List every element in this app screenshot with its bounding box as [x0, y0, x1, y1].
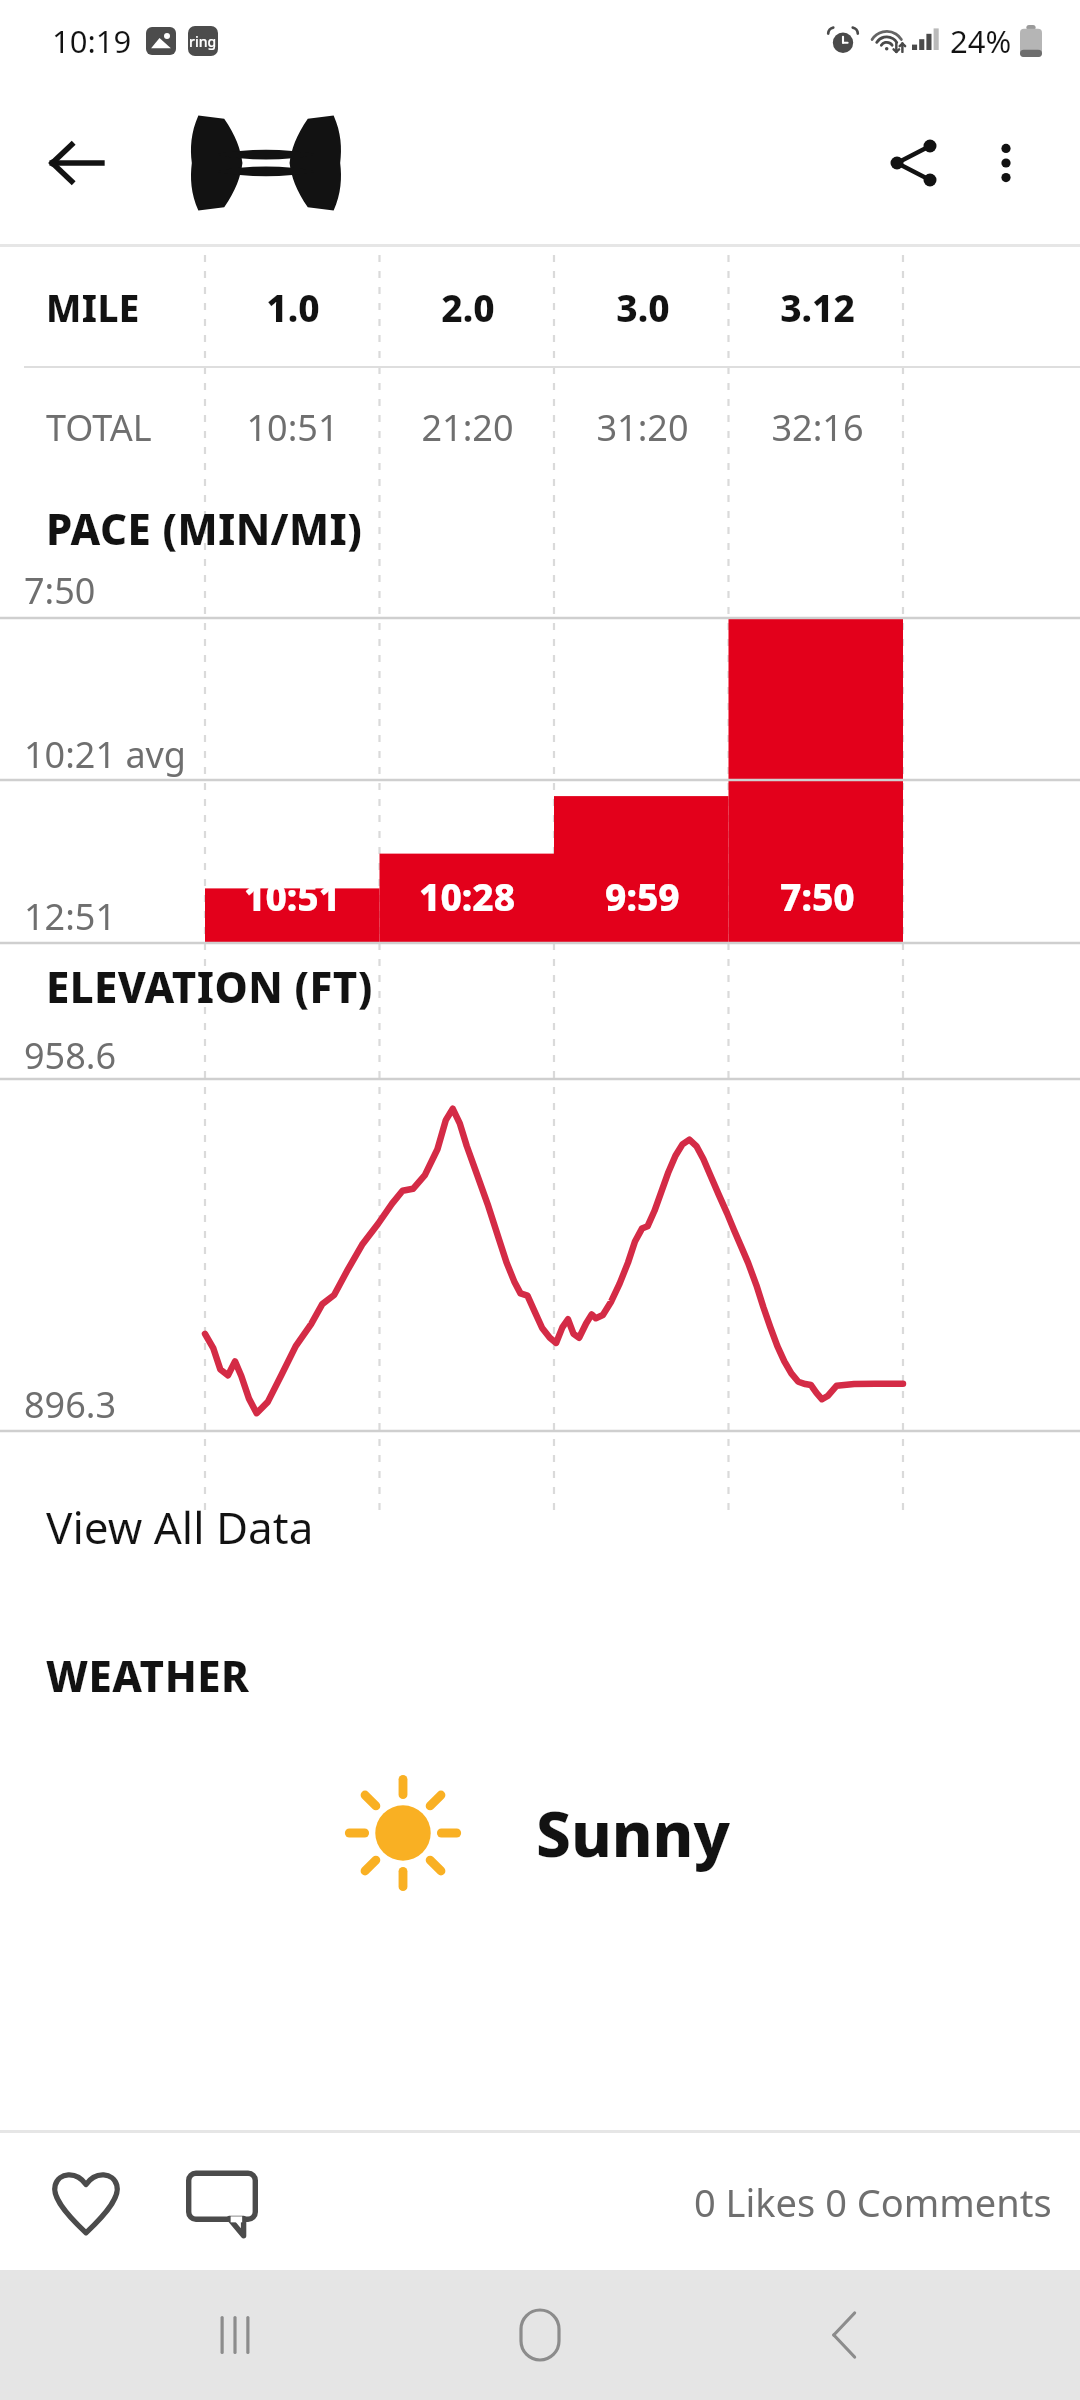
button[interactable]: Share: [866, 115, 962, 211]
staticText: PACE (MIN/MI): [46, 500, 363, 557]
button[interactable]: Comment: [170, 2150, 274, 2254]
button[interactable]: More options: [962, 119, 1050, 207]
staticText: 24%: [950, 20, 1012, 62]
staticText: TOTAL: [46, 403, 152, 452]
staticText: 32:16: [771, 403, 864, 452]
staticText: 10:51: [246, 403, 339, 452]
staticText: 9:59: [605, 871, 680, 921]
button[interactable]: View All Data: [0, 1479, 1080, 1575]
staticText: 2.0: [441, 282, 495, 332]
staticText: 10:19: [52, 20, 132, 62]
staticText: 3.0: [616, 282, 670, 332]
button[interactable]: Back: [28, 115, 124, 211]
staticText: ELEVATION (FT): [46, 958, 373, 1015]
staticText: 958.6: [24, 1031, 117, 1080]
staticText: 10:28: [419, 871, 516, 921]
staticText: View All Data: [46, 1497, 314, 1557]
staticText: Sunny: [536, 1791, 730, 1875]
staticText: 31:20: [596, 403, 689, 452]
staticText: 10:21 avg: [24, 730, 187, 779]
staticText: 1.0: [266, 282, 320, 332]
staticText: 21:20: [421, 403, 514, 452]
button[interactable]: Recents: [165, 2270, 305, 2400]
button[interactable]: Back: [775, 2270, 915, 2400]
staticText: 10:51: [244, 871, 341, 921]
staticText: 12:51: [24, 892, 117, 941]
staticText: 7:50: [780, 871, 855, 921]
staticText: 3.12: [780, 282, 855, 332]
button[interactable]: Like: [34, 2150, 138, 2254]
staticText: 896.3: [24, 1380, 117, 1429]
staticText: 7:50: [24, 566, 96, 615]
staticText: 0 Likes 0 Comments: [694, 2176, 1052, 2228]
staticText: ring: [189, 32, 217, 51]
staticText: WEATHER: [46, 1647, 250, 1704]
button[interactable]: Home: [470, 2270, 610, 2400]
staticText: MILE: [46, 282, 140, 332]
